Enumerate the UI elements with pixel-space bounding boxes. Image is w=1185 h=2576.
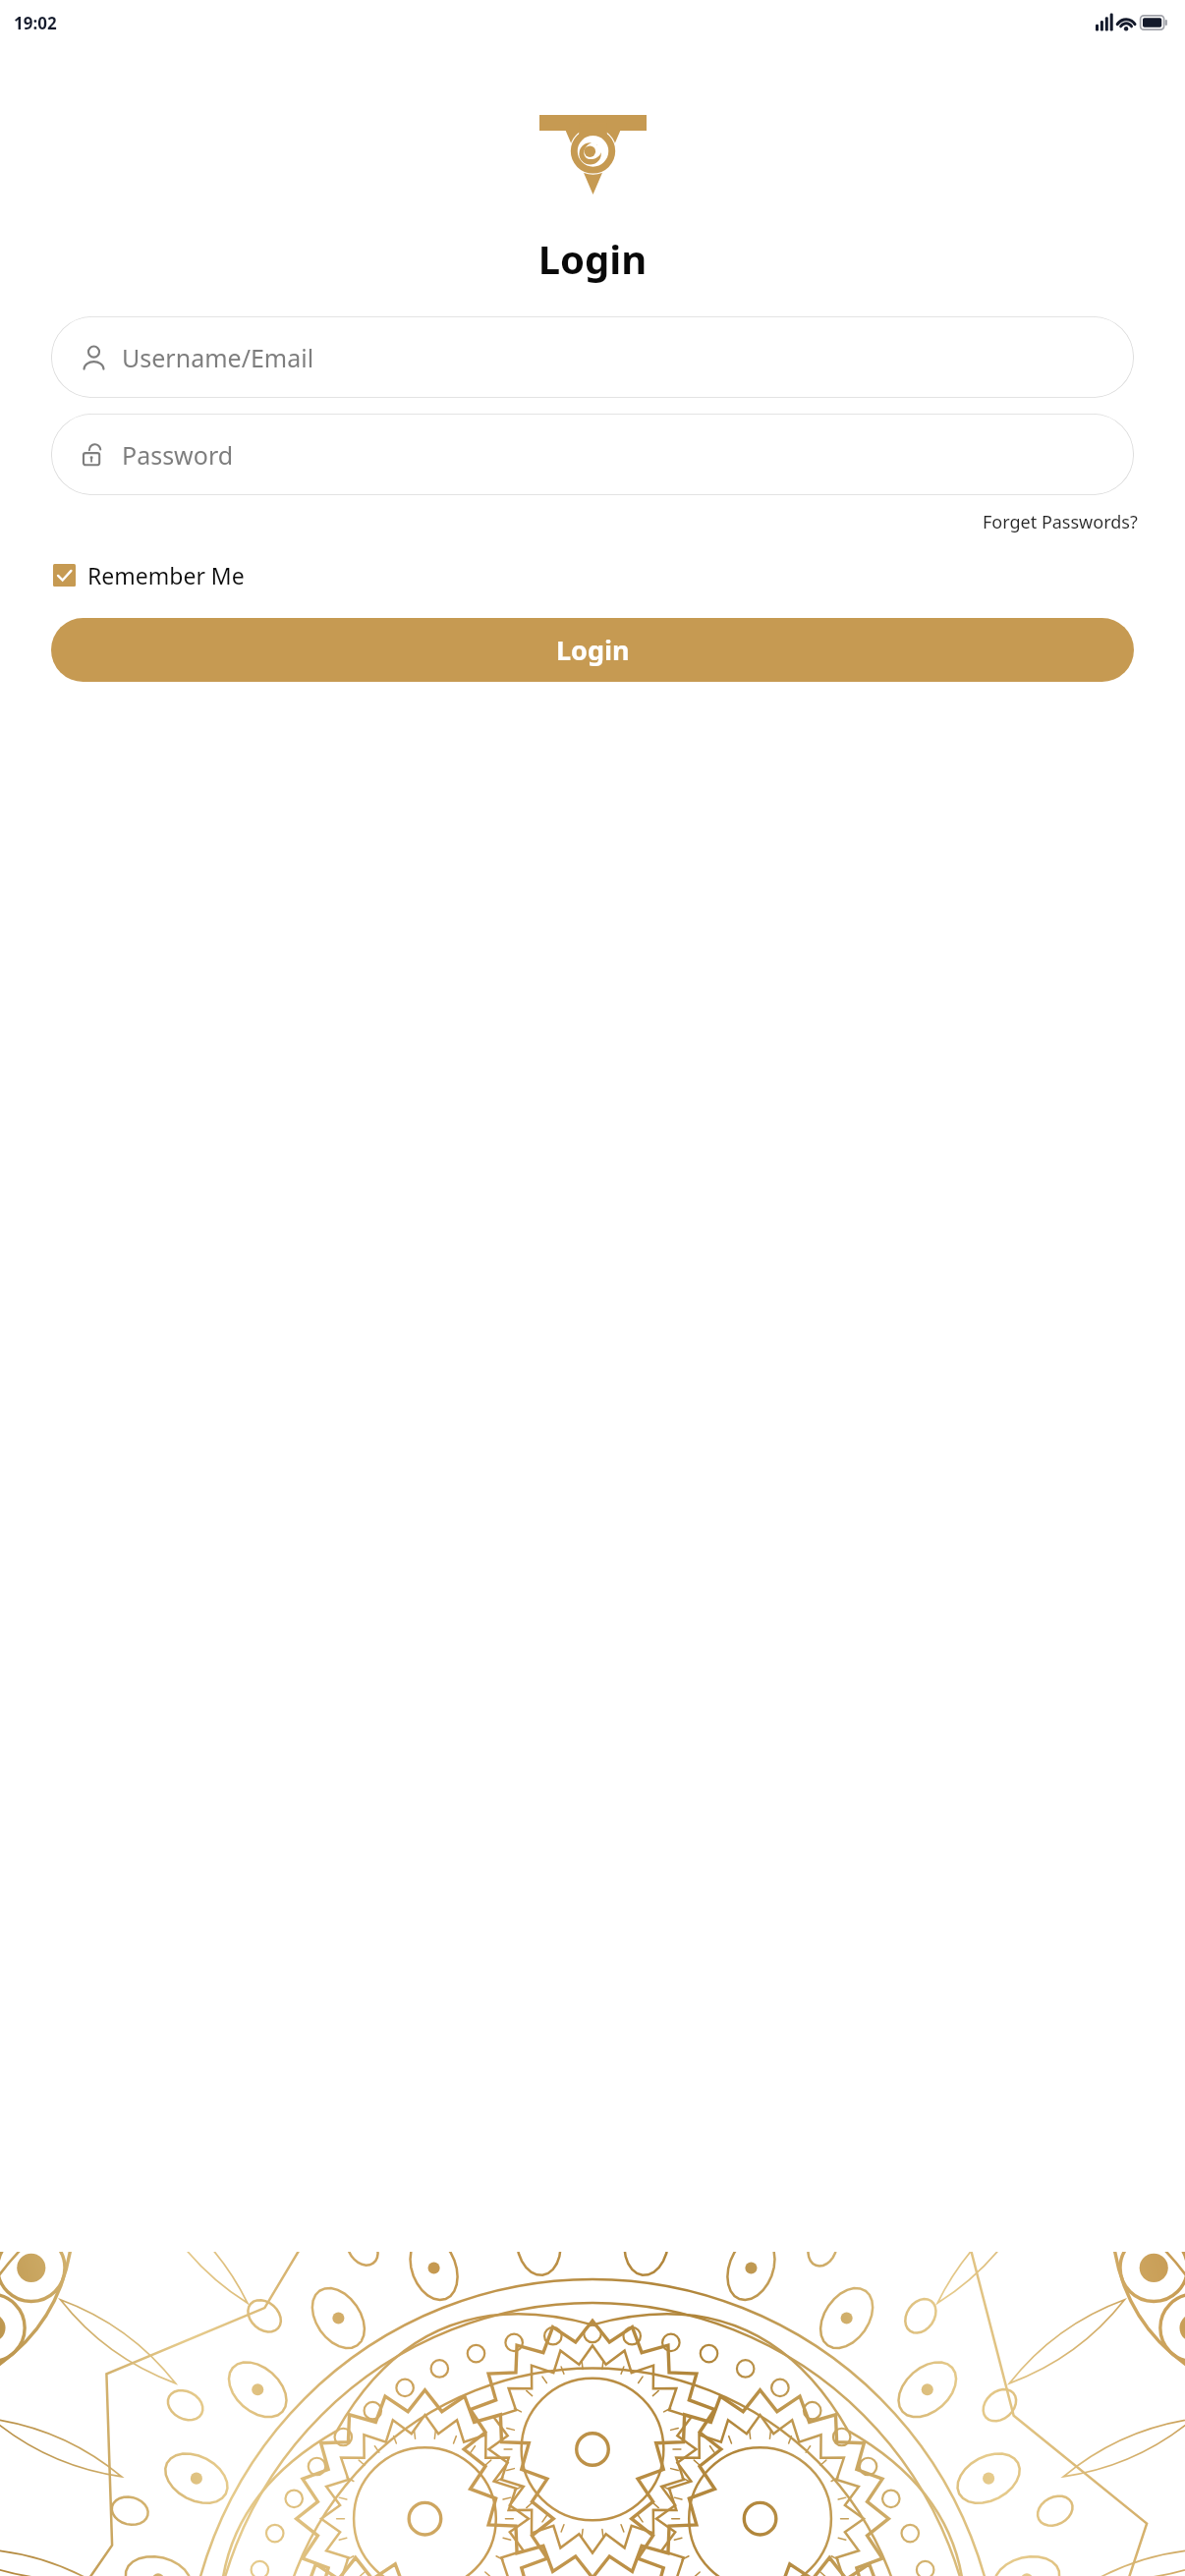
staticText: Forget Passwords?	[983, 510, 1138, 534]
button[interactable]: Username/Email	[51, 316, 1134, 398]
staticText: Login	[0, 232, 1185, 285]
staticText: Password	[122, 438, 234, 472]
staticText: Remember Me	[87, 560, 245, 590]
other: App logo	[539, 115, 647, 195]
button[interactable]: Remember Me	[51, 556, 247, 594]
button[interactable]: Forget Passwords?	[980, 506, 1141, 538]
staticText: Username/Email	[122, 341, 314, 374]
button[interactable]: Login	[51, 618, 1134, 682]
staticText: Login	[556, 632, 630, 668]
staticText: 19:02	[14, 12, 57, 34]
button[interactable]: Password	[51, 414, 1134, 495]
